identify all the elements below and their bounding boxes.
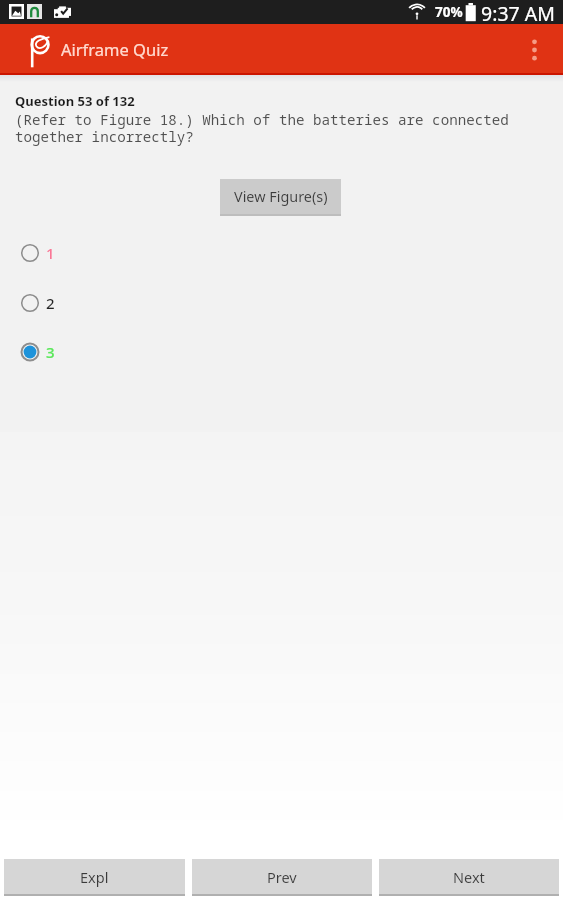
button[interactable]: 3 (0, 329, 563, 375)
button[interactable]: View Figure(s) (220, 179, 341, 216)
button[interactable]: Next (379, 859, 559, 896)
staticText: 9:37 AM (481, 0, 555, 24)
staticText: Next (453, 867, 485, 887)
staticText: Airframe Quiz (61, 38, 169, 60)
button[interactable]: Expl (4, 859, 185, 896)
button[interactable]: More options (510, 26, 558, 74)
staticText: View Figure(s) (234, 187, 328, 207)
staticText: 70% (435, 3, 463, 21)
staticText: Expl (80, 867, 109, 887)
staticText: 2 (46, 293, 55, 313)
staticText: Prev (267, 867, 297, 887)
staticText: 1 (46, 243, 55, 263)
staticText: Question 53 of 132 (15, 92, 135, 110)
staticText: 3 (46, 342, 55, 362)
button[interactable]: Prev (192, 859, 372, 896)
button[interactable]: 1 (0, 230, 563, 276)
staticText: (Refer to Figure 18.) Which of the batte… (15, 110, 509, 146)
button[interactable]: 2 (0, 280, 563, 326)
